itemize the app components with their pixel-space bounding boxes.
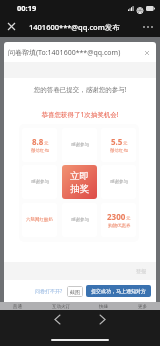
staticText: 感谢参与 [31,179,49,185]
staticText: 00:19 [17,3,37,13]
staticText: 元 [126,216,131,222]
staticText: 登报 [136,268,146,274]
button[interactable]: 感谢参与 [22,165,57,199]
staticText: 六瓶网红酸奶 [26,217,53,223]
staticText: 恭喜您获得了1次抽奖机会! [0,110,160,119]
staticText: 2300 [107,211,126,222]
button[interactable]: Clear [142,48,152,58]
staticText: 互动火订 [52,304,70,310]
staticText: 8.8 [32,136,44,147]
button[interactable]: 六瓶网红酸奶 [22,203,57,237]
staticText: 1401600***@qq.com发布 [29,22,120,32]
staticText: 您的答卷已提交，感谢您的参与! [0,85,160,94]
staticText: 元 [44,141,49,147]
staticText: 快捷 [99,304,108,310]
button[interactable]: 感谢参与 [62,203,97,237]
button[interactable]: 感谢参与 [62,128,97,162]
staticText: 微信红包 [31,148,49,154]
button[interactable]: Forward [94,311,110,327]
staticText: 普通 [13,304,22,310]
button[interactable]: More options [139,18,157,36]
staticText: 5.5 [111,136,123,147]
staticText: 提交成功，马上通知对方 [91,288,146,294]
button[interactable]: 立即 抽奖 [62,165,97,199]
staticText: 感谢参与 [71,217,89,223]
button[interactable]: 问卷打不开? [33,286,65,297]
staticText: 购物优惠券 [108,223,131,229]
staticText: 感谢参与 [110,179,128,185]
button[interactable]: 感谢参与 [101,165,136,199]
staticText: 问卷打不开? [35,288,63,295]
staticText: 微信红包 [110,148,128,154]
staticText: 元 [123,141,128,147]
button[interactable]: 截图 [67,286,83,297]
staticText: 问卷帮填(To:1401600***@qq.com) [8,48,121,58]
button[interactable]: 5.5 [101,128,136,162]
button[interactable]: 提交成功，马上通知对方 [86,285,151,297]
staticText: 立即 抽奖 [70,170,89,195]
staticText: 感谢参与 [71,142,89,148]
button[interactable]: 8.8 [22,128,57,162]
button[interactable]: Close [0,16,22,37]
staticText: 更多 [138,304,147,310]
button[interactable]: 问卷帮填(To:1401600***@qq.com) [4,42,156,64]
button[interactable]: Back [49,311,65,327]
button[interactable]: 2300 [101,203,136,237]
staticText: 截图 [70,289,80,295]
